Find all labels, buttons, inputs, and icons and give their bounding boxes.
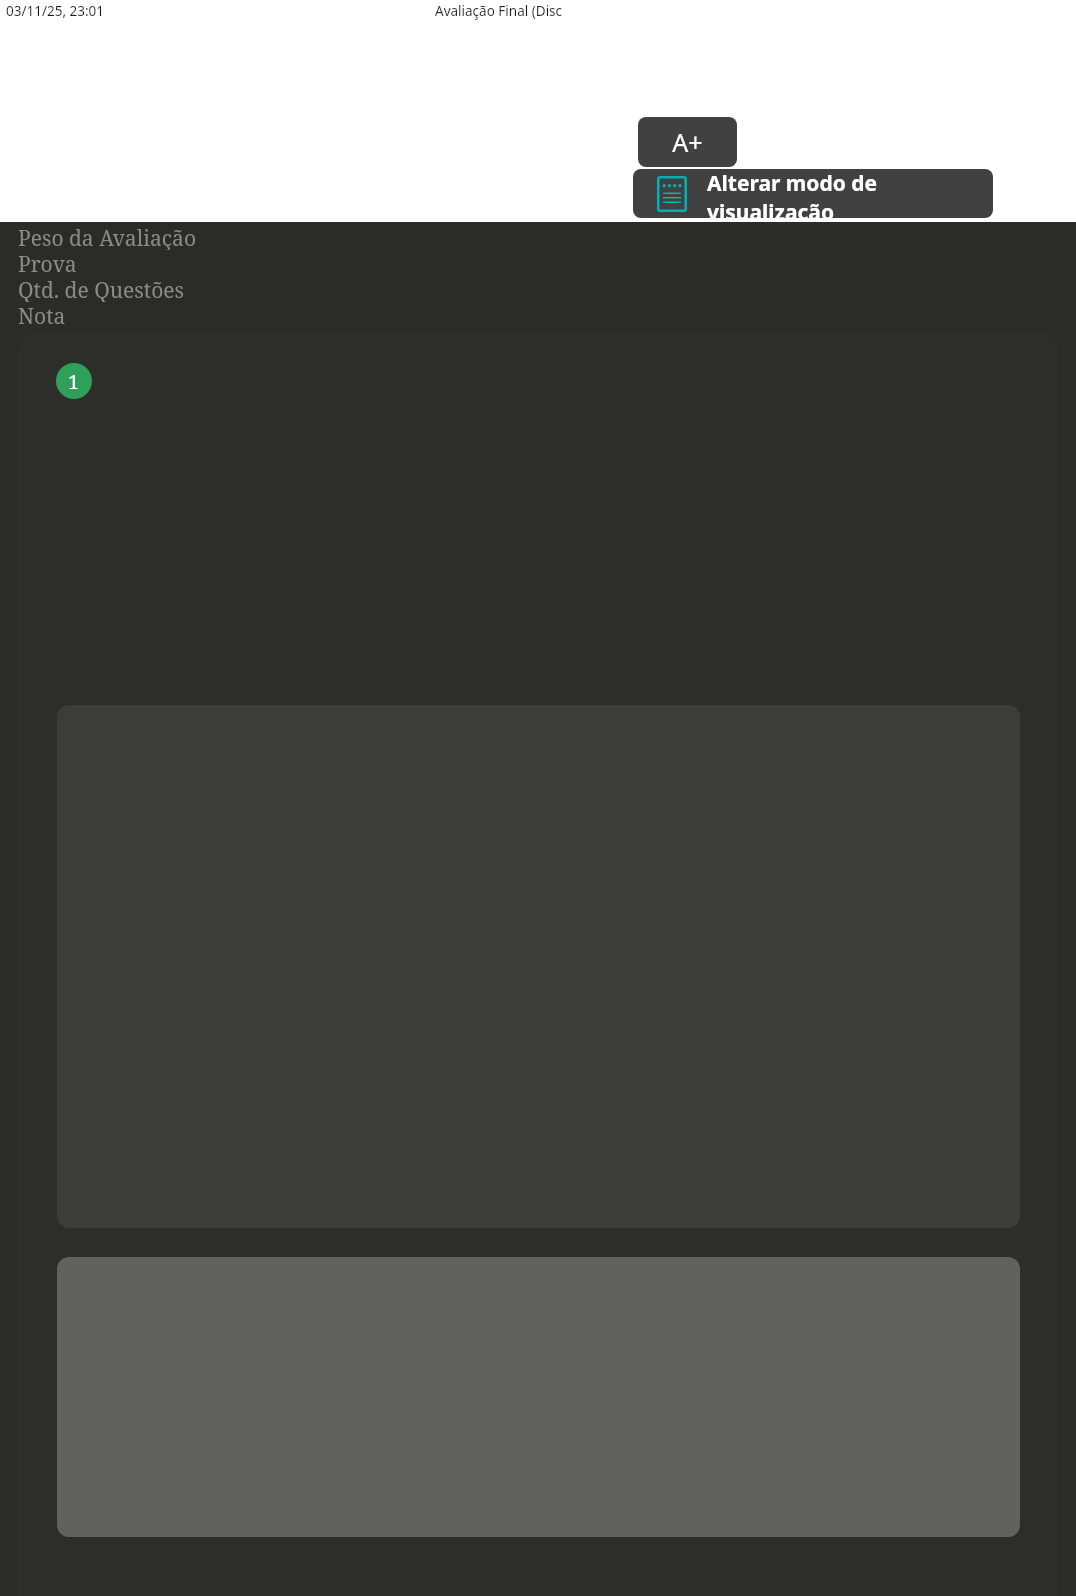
staticText: Peso da Avaliação [18,224,196,250]
button[interactable]: Alterar modo de visualização [633,169,993,218]
staticText: Alterar modo de visualização [707,169,993,218]
staticText: 03/11/25, 23:01 [6,2,105,20]
button[interactable]: 1 [56,363,92,399]
staticText: Nota [18,302,66,328]
staticText: A+ [672,125,703,159]
staticText: 1 [68,368,80,395]
button[interactable]: A+ [638,117,737,167]
staticText: Avaliação Final (Disc [435,2,563,20]
staticText: Qtd. de Questões [18,276,185,302]
staticText: Prova [18,250,77,276]
